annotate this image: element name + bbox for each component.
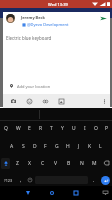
button[interactable]: O: [90, 122, 101, 134]
staticText: G: [55, 143, 59, 150]
button[interactable]: Recent apps: [70, 186, 82, 200]
button[interactable]: Add GIF: [41, 94, 50, 108]
button[interactable]: .: [89, 174, 98, 186]
staticText: D: [33, 143, 37, 150]
button[interactable]: Emoji keyboard: [25, 174, 34, 186]
staticText: Wed 13:39: [48, 2, 68, 7]
button[interactable]: W: [12, 122, 24, 134]
staticText: ?123: [4, 178, 13, 183]
button[interactable]: Add your location: [3, 80, 110, 92]
staticText: Y: [61, 125, 64, 132]
button[interactable]: Y: [57, 122, 68, 134]
staticText: K: [88, 143, 92, 150]
staticText: Electric blue keyboard: [6, 35, 52, 41]
staticText: B: [67, 160, 71, 167]
button[interactable]: J: [73, 140, 84, 152]
staticText: U: [72, 125, 76, 132]
staticText: N: [80, 160, 84, 167]
staticText: P: [105, 125, 109, 132]
button[interactable]: H: [62, 140, 73, 152]
staticText: F: [44, 143, 47, 150]
button[interactable]: Hide keyboard: [100, 188, 110, 198]
staticText: S: [22, 143, 25, 150]
button[interactable]: M: [88, 157, 101, 169]
button[interactable]: More options: [100, 97, 109, 106]
button[interactable]: Enter: [98, 174, 112, 186]
button[interactable]: R: [35, 122, 46, 134]
button[interactable]: U: [68, 122, 79, 134]
button[interactable]: B: [62, 157, 75, 169]
staticText: T: [50, 125, 53, 132]
staticText: R: [39, 125, 43, 132]
button[interactable]: Z: [11, 157, 23, 169]
staticText: L: [99, 143, 102, 150]
staticText: W: [16, 125, 21, 132]
staticText: A: [10, 143, 14, 150]
button[interactable]: @Dyevo Development: [22, 22, 69, 27]
button[interactable]: P: [101, 122, 112, 134]
button[interactable]: D: [29, 140, 40, 152]
staticText: O: [94, 125, 98, 132]
button[interactable]: A: [6, 140, 18, 152]
button[interactable]: V: [49, 157, 62, 169]
button[interactable]: Backspace: [101, 157, 112, 169]
staticText: .: [93, 177, 95, 184]
button[interactable]: Take photo: [9, 94, 18, 108]
staticText: I: [84, 125, 86, 132]
staticText: Add your location: [17, 84, 51, 89]
staticText: V: [54, 160, 58, 167]
button[interactable]: I: [79, 122, 90, 134]
button[interactable]: S: [18, 140, 29, 152]
button[interactable]: ?123: [0, 174, 16, 186]
button[interactable]: Shift: [1, 158, 10, 169]
button[interactable]: ,: [16, 174, 25, 186]
button[interactable]: Q: [0, 122, 12, 134]
button[interactable]: E: [24, 122, 35, 134]
button[interactable]: Add emoji: [25, 94, 34, 108]
staticText: ,: [20, 177, 22, 184]
staticText: J: [78, 143, 80, 150]
button[interactable]: Profile photo: [6, 14, 15, 23]
button[interactable]: Back: [22, 186, 34, 200]
button[interactable]: N: [75, 157, 88, 169]
button[interactable]: Send tweet: [98, 13, 108, 23]
staticText: H: [66, 143, 70, 150]
button[interactable]: F: [40, 140, 51, 152]
button[interactable]: C: [36, 157, 49, 169]
staticText: Jeremy Beck: [21, 15, 45, 20]
staticText: X: [28, 160, 31, 167]
button[interactable]: K: [84, 140, 95, 152]
button[interactable]: T: [46, 122, 57, 134]
staticText: E: [28, 125, 31, 132]
button[interactable]: Home: [46, 186, 58, 200]
staticText: C: [41, 160, 45, 167]
staticText: M: [92, 160, 97, 167]
staticText: Z: [16, 160, 19, 167]
staticText: Q: [4, 125, 8, 132]
button[interactable]: G: [51, 140, 62, 152]
button[interactable]: L: [95, 140, 106, 152]
staticText: @Dyevo Development: [27, 22, 69, 27]
button[interactable]: X: [23, 157, 36, 169]
button[interactable]: Add image: [57, 94, 66, 108]
